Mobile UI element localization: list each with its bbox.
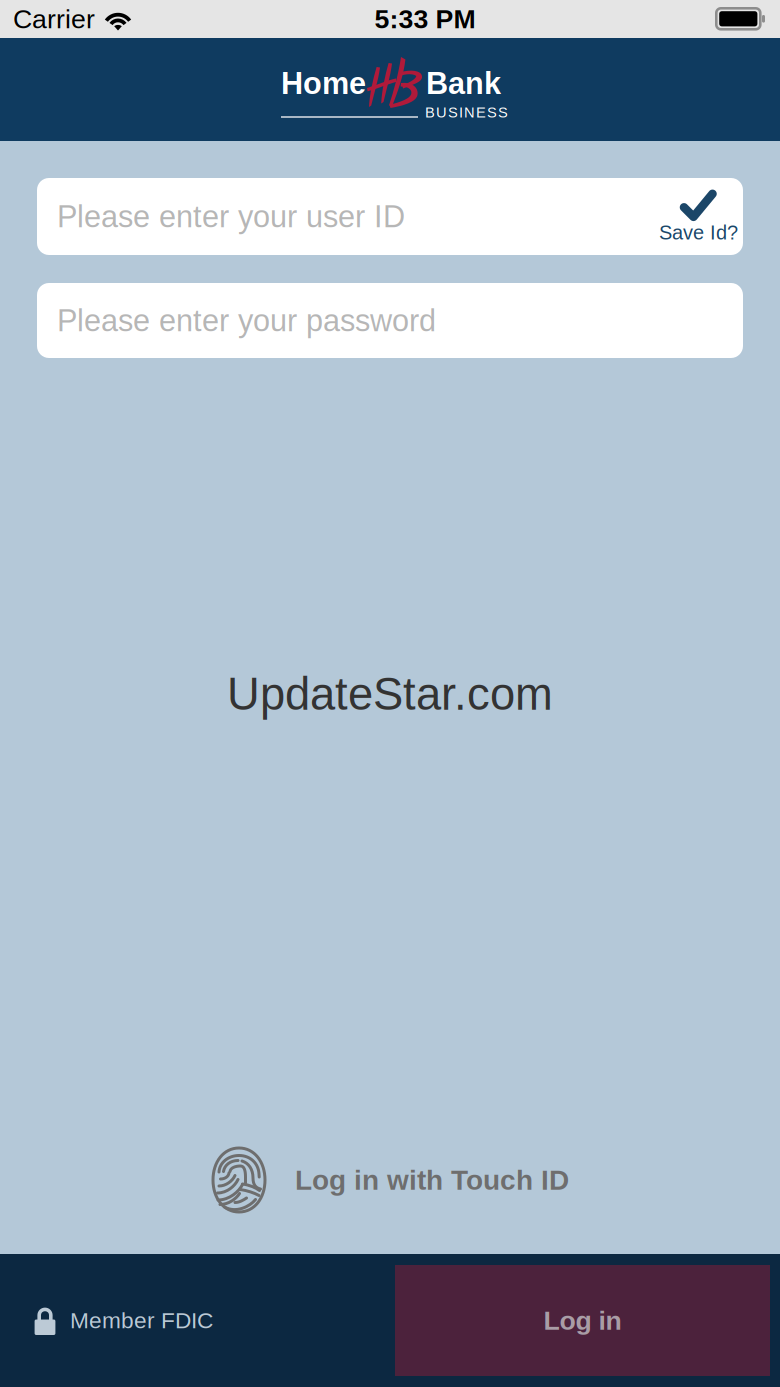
staticText: UpdateStar.com: [227, 669, 553, 719]
button[interactable]: Log in with Touch ID: [211, 1146, 569, 1214]
button[interactable]: Member FDIC: [0, 1254, 213, 1387]
staticText: B U S I N E S S: [425, 104, 508, 121]
staticText: Please enter your user ID: [57, 199, 405, 234]
button[interactable]: Log in: [395, 1265, 770, 1376]
staticText: Member FDIC: [70, 1308, 213, 1333]
button[interactable]: Please enter your password: [37, 283, 743, 358]
staticText: Bank: [426, 66, 501, 100]
staticText: Log in with Touch ID: [295, 1164, 569, 1196]
button[interactable]: Please enter your user ID: [37, 178, 743, 255]
staticText: 5:33 PM: [374, 4, 475, 34]
staticText: Please enter your password: [57, 303, 436, 338]
staticText: Home: [281, 66, 366, 100]
staticText: Save Id?: [659, 221, 738, 244]
staticText: Log in: [543, 1306, 621, 1335]
staticText: Carrier: [13, 4, 95, 34]
